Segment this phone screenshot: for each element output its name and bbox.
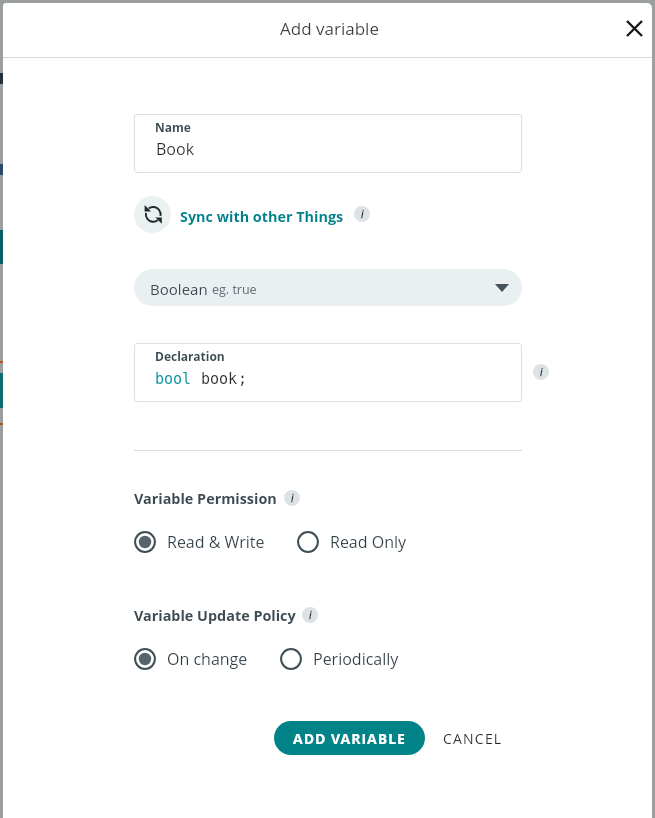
staticText: ; bbox=[238, 370, 248, 387]
button[interactable]: ADD VARIABLE bbox=[274, 721, 425, 755]
staticText: Add variable bbox=[280, 17, 379, 40]
staticText: i bbox=[540, 365, 543, 379]
staticText: Book bbox=[156, 138, 195, 160]
staticText: CANCEL bbox=[443, 729, 503, 748]
staticText: Read & Write bbox=[167, 531, 265, 553]
staticText: bool bbox=[155, 370, 192, 387]
button[interactable]: More info bbox=[302, 607, 318, 623]
staticText: Read Only bbox=[330, 531, 407, 553]
staticText: Periodically bbox=[313, 648, 399, 670]
button[interactable]: On change bbox=[134, 648, 248, 670]
staticText: Variable Permission bbox=[134, 489, 277, 509]
button[interactable]: More info bbox=[354, 206, 370, 222]
staticText: Name bbox=[155, 119, 191, 135]
staticText: eg. true bbox=[212, 281, 257, 298]
button[interactable]: Close bbox=[612, 6, 652, 50]
staticText: Variable Update Policy bbox=[134, 606, 296, 626]
button[interactable]: Name bbox=[134, 114, 522, 173]
button[interactable]: CANCEL bbox=[436, 721, 510, 755]
button[interactable]: Sync bbox=[134, 196, 171, 233]
staticText: i bbox=[309, 608, 312, 622]
button[interactable]: Declaration bbox=[134, 343, 522, 402]
staticText: i bbox=[361, 207, 364, 221]
staticText: ADD VARIABLE bbox=[293, 729, 406, 748]
button[interactable]: Sync with other Things bbox=[180, 207, 344, 227]
staticText: On change bbox=[167, 648, 248, 670]
staticText: Boolean bbox=[150, 279, 208, 299]
button[interactable]: Read Only bbox=[297, 531, 407, 553]
button[interactable]: Read & Write bbox=[134, 531, 265, 553]
button[interactable]: Boolean bbox=[134, 269, 522, 306]
staticText: i bbox=[291, 491, 294, 505]
staticText: book bbox=[201, 370, 238, 387]
button[interactable]: Periodically bbox=[280, 648, 399, 670]
staticText: Declaration bbox=[155, 348, 225, 364]
button[interactable]: More info bbox=[533, 364, 549, 380]
button[interactable]: More info bbox=[284, 490, 300, 506]
